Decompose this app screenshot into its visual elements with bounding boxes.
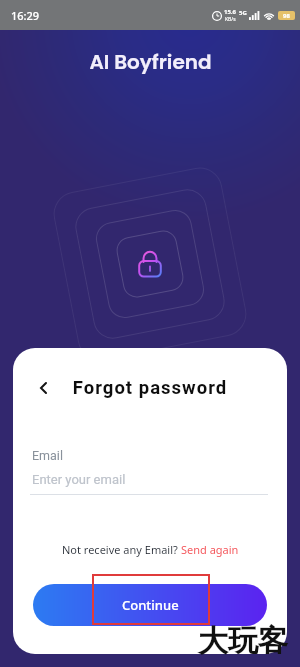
staticText: KB/s (225, 16, 236, 23)
button[interactable]: Back (30, 375, 56, 401)
staticText: 5G (239, 9, 247, 17)
staticText: Email (32, 448, 63, 463)
staticText: Continue (122, 596, 179, 614)
staticText: 大玩客 (198, 622, 288, 660)
button[interactable]: Continue (33, 584, 267, 626)
button[interactable]: Send again (181, 542, 239, 557)
staticText: AI Boyfriend (89, 48, 212, 74)
staticText: 98 (283, 12, 290, 20)
staticText: Not receive any Email? (62, 542, 181, 557)
staticText: 15.6 (224, 8, 236, 16)
staticText: Enter your email (32, 472, 126, 487)
staticText: 16:29 (11, 8, 40, 23)
staticText: Forgot password (13, 377, 287, 399)
